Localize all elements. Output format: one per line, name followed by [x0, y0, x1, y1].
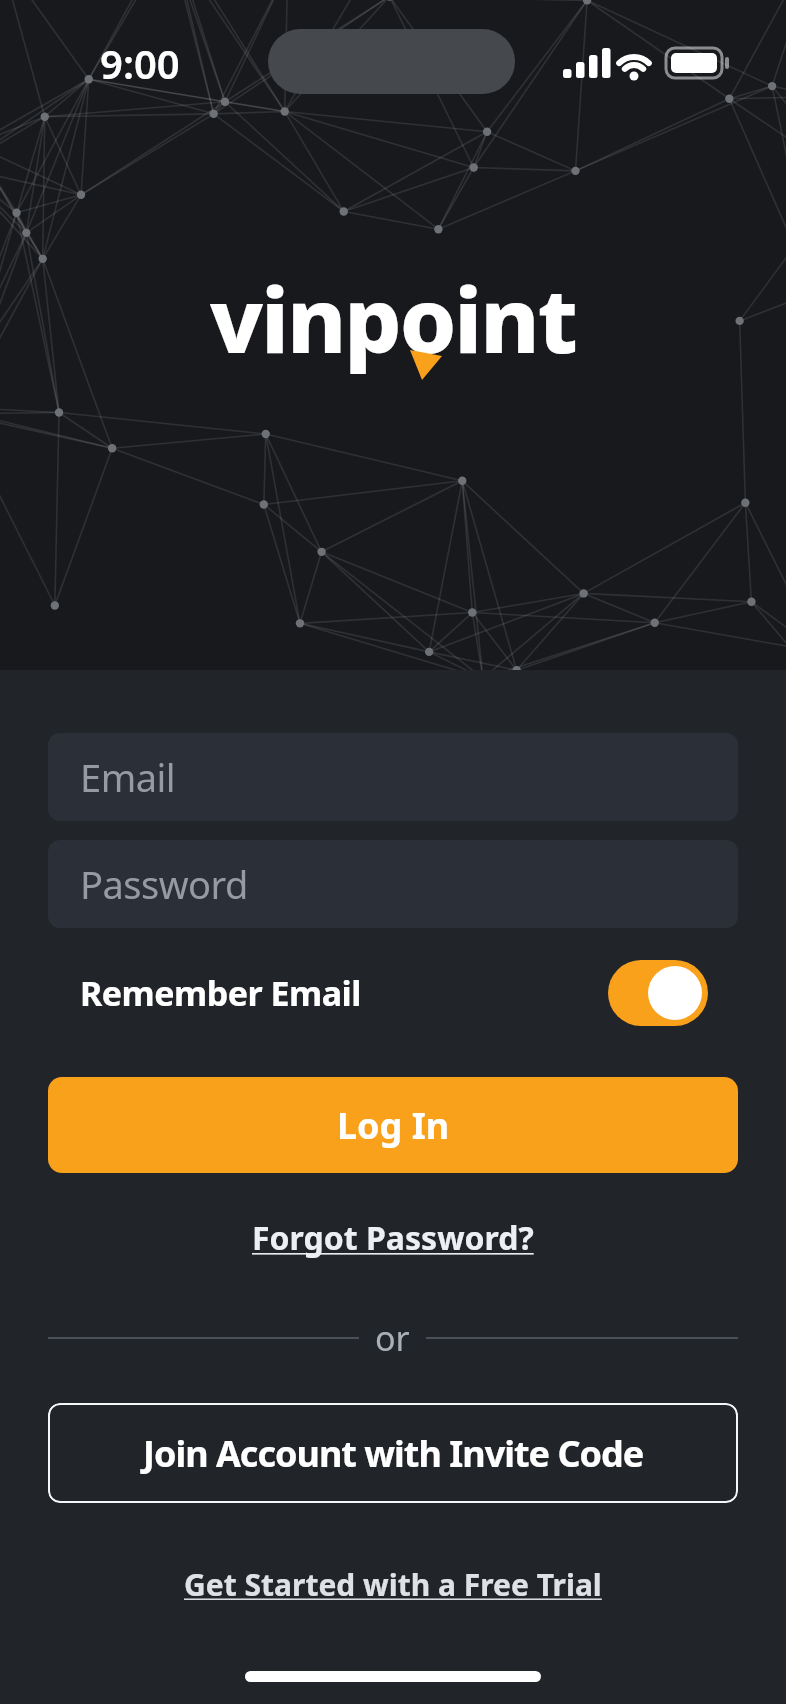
button[interactable]: Join Account with Invite Code — [48, 1403, 738, 1503]
staticText: 9:00 — [100, 36, 180, 90]
button[interactable]: Log In — [48, 1077, 738, 1173]
staticText: Log In — [337, 1101, 450, 1150]
button[interactable]: Email — [48, 733, 738, 821]
staticText: Join Account with Invite Code — [143, 1429, 644, 1478]
button[interactable]: Get Started with a Free Trial — [184, 1564, 602, 1605]
staticText: Password — [80, 858, 248, 910]
staticText: Email — [80, 751, 176, 803]
staticText: or — [375, 1315, 410, 1361]
button[interactable] — [608, 960, 708, 1026]
staticText: vinpoint — [210, 257, 576, 380]
button[interactable]: Password — [48, 840, 738, 928]
button[interactable]: Forgot Password? — [252, 1216, 534, 1260]
staticText: Remember Email — [80, 970, 361, 1016]
